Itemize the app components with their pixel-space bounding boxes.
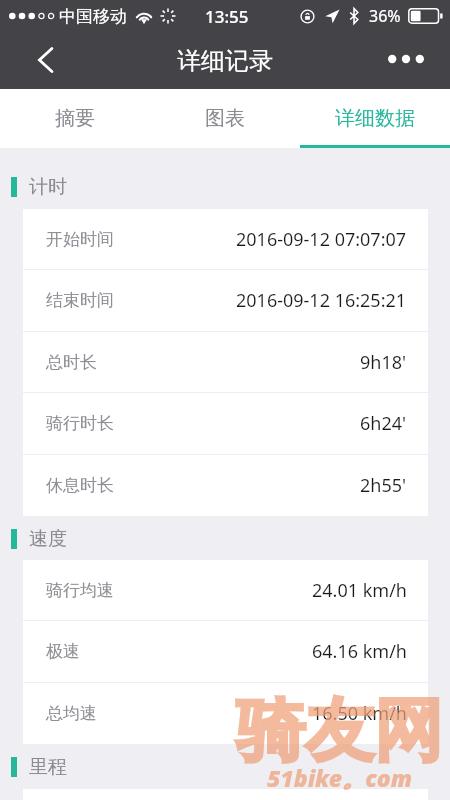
button[interactable]: 总均速: [23, 683, 428, 744]
staticText: 36%: [369, 5, 401, 27]
button[interactable]: 骑行时长: [23, 393, 428, 454]
staticText: 2016-09-12 16:25:21: [236, 288, 407, 313]
staticText: 9h18': [360, 350, 407, 375]
staticText: 2h55': [360, 473, 407, 498]
button[interactable]: 极速: [23, 621, 428, 682]
staticText: 64.16 km/h: [312, 639, 407, 664]
staticText: 总均速: [46, 703, 97, 724]
staticText: 骑行时长: [46, 413, 114, 434]
button[interactable]: 总时长: [23, 332, 428, 393]
button[interactable]: Back: [0, 32, 74, 89]
button[interactable]: 摘要: [0, 89, 150, 148]
staticText: 16.50 km/h: [312, 701, 407, 726]
button[interactable]: 骑行均速: [23, 560, 428, 621]
staticText: 摘要: [55, 106, 95, 131]
staticText: 里程: [29, 755, 67, 779]
staticText: 骑友网: [236, 688, 443, 775]
staticText: 速度: [29, 527, 67, 551]
staticText: 24.01 km/h: [312, 578, 407, 603]
staticText: 详细记录: [177, 46, 273, 76]
staticText: 计时: [29, 175, 67, 199]
staticText: 13:55: [205, 5, 249, 28]
staticText: 总时长: [46, 352, 97, 373]
staticText: 详细数据: [335, 106, 415, 131]
staticText: 中国移动: [59, 6, 127, 27]
button[interactable]: 结束时间: [23, 270, 428, 331]
button[interactable]: 开始时间: [23, 209, 428, 270]
button[interactable]: 详细数据: [300, 89, 450, 148]
button[interactable]: More options: [370, 32, 450, 89]
staticText: 开始时间: [46, 229, 114, 250]
staticText: 51bike。com: [267, 762, 413, 793]
staticText: 2016-09-12 07:07:07: [236, 227, 407, 252]
staticText: 骑行均速: [46, 580, 114, 601]
staticText: 休息时长: [46, 475, 114, 496]
staticText: 极速: [46, 641, 80, 662]
button[interactable]: 休息时长: [23, 455, 428, 516]
staticText: 图表: [205, 106, 245, 131]
button[interactable]: 图表: [150, 89, 300, 148]
staticText: 结束时间: [46, 290, 114, 311]
staticText: 6h24': [360, 411, 407, 436]
